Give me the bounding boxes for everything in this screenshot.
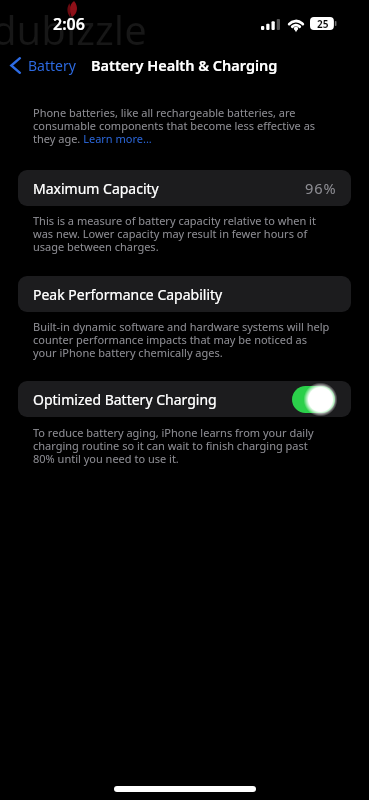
- staticText: Battery Health & Charging: [91, 55, 278, 75]
- staticText: Maximum Capacity: [33, 179, 159, 198]
- staticText: Peak Performance Capability: [33, 285, 223, 304]
- staticText: This is a measure of battery capacity re…: [33, 213, 369, 255]
- button[interactable]: Optimized Battery Charging: [18, 381, 351, 417]
- staticText: Battery: [28, 56, 76, 75]
- staticText: 2:06: [53, 13, 85, 35]
- button[interactable]: Battery: [0, 51, 84, 80]
- staticText: Phone batteries, like all rechargeable b…: [33, 105, 369, 147]
- button[interactable]: Peak Performance Capability: [18, 276, 351, 312]
- staticText: 96%: [305, 178, 337, 198]
- button[interactable]: Maximum Capacity: [18, 170, 351, 206]
- staticText: To reduce battery aging, iPhone learns f…: [33, 425, 369, 467]
- button[interactable]: Optimized Battery Charging toggle: [292, 386, 335, 413]
- staticText: Built-in dynamic software and hardware s…: [33, 319, 369, 361]
- staticText: 25: [317, 17, 329, 30]
- staticText: dubizzle: [0, 2, 147, 56]
- staticText: Optimized Battery Charging: [33, 390, 217, 409]
